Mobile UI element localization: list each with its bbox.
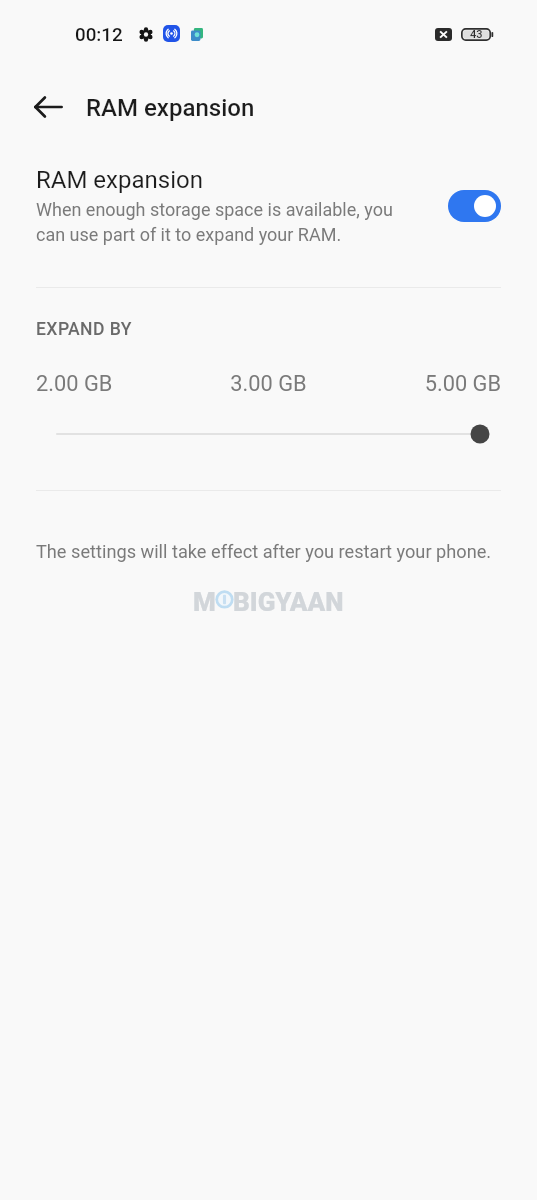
button[interactable]: Back <box>30 85 66 129</box>
button[interactable]: Expand by amount slider <box>36 419 501 449</box>
button[interactable]: RAM expansion toggle <box>448 190 501 222</box>
staticText: The settings will take effect after you … <box>36 541 492 562</box>
staticText: When enough storage space is available, … <box>36 199 393 245</box>
staticText: EXPAND BY <box>36 319 132 340</box>
staticText: BIGYAAN <box>233 587 344 611</box>
staticText: M <box>193 587 216 611</box>
staticText: RAM expansion <box>36 166 203 194</box>
staticText: 5.00 GB <box>346 371 501 397</box>
staticText: 2.00 GB <box>36 371 191 397</box>
staticText: 3.00 GB <box>191 371 346 397</box>
staticText: RAM expansion <box>86 94 255 122</box>
staticText: 00:12 <box>75 24 123 46</box>
staticText: 43 <box>470 28 483 41</box>
